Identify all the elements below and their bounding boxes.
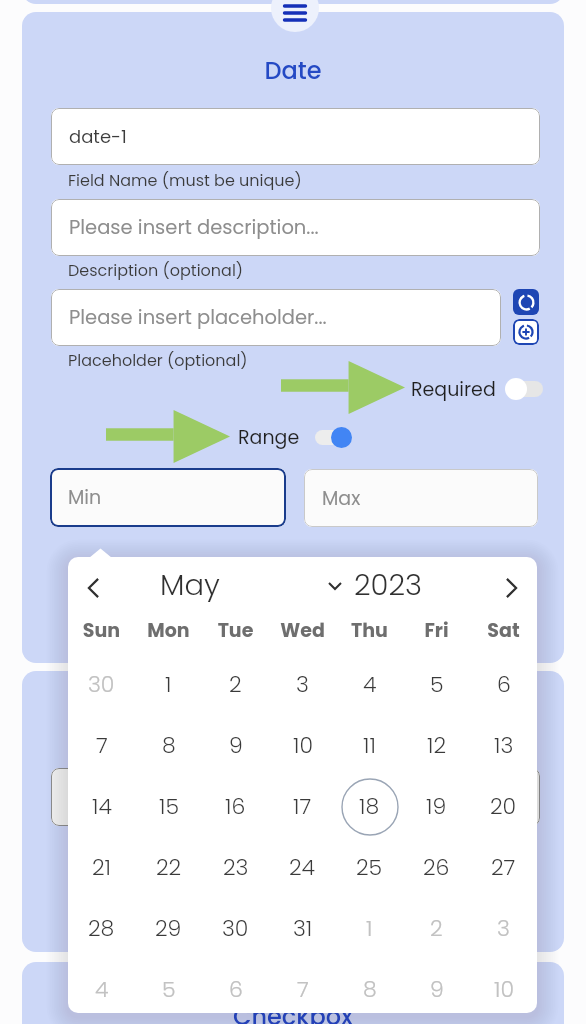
button[interactable]: Add variable	[513, 319, 539, 345]
button[interactable]: 27	[470, 837, 537, 898]
button[interactable]: 2	[403, 898, 470, 959]
button[interactable]: 8	[336, 959, 403, 1013]
staticText: 2	[229, 669, 242, 700]
staticText: Placeholder (optional)	[68, 349, 248, 371]
staticText: 28	[88, 913, 115, 944]
staticText: Required	[411, 376, 496, 403]
button[interactable]: 3	[470, 898, 537, 959]
staticText: 6	[229, 974, 243, 1005]
staticText: 18	[359, 791, 380, 822]
staticText: 1	[366, 913, 373, 944]
button[interactable]: 5	[135, 959, 202, 1013]
button[interactable]: 10	[470, 959, 537, 1013]
staticText: 11	[363, 730, 376, 761]
staticText: 2023	[354, 565, 423, 606]
button[interactable]: 8	[135, 715, 202, 776]
staticText: 9	[430, 974, 444, 1005]
button[interactable]: Range	[238, 422, 352, 452]
button[interactable]: 4	[336, 654, 403, 715]
staticText: Wed	[269, 617, 336, 644]
button[interactable]: date-1	[51, 108, 540, 165]
button[interactable]: 2	[202, 654, 269, 715]
button[interactable]: 28	[68, 898, 135, 959]
button[interactable]: Please insert description...	[51, 199, 540, 256]
button[interactable]: 16	[202, 776, 269, 837]
button[interactable]: 30	[202, 898, 269, 959]
button[interactable]: 31	[269, 898, 336, 959]
button[interactable]: 9	[403, 959, 470, 1013]
button[interactable]: 17	[269, 776, 336, 837]
button[interactable]: Next month	[492, 569, 530, 607]
staticText: Checkbox	[22, 1000, 564, 1024]
staticText: Description (optional)	[68, 259, 244, 281]
staticText: Sun	[68, 617, 135, 644]
button[interactable]: 9	[202, 715, 269, 776]
button[interactable]: 22	[135, 837, 202, 898]
button[interactable]: 25	[336, 837, 403, 898]
staticText: Thu	[336, 617, 403, 644]
staticText: 1	[165, 669, 172, 700]
staticText: date-1	[69, 124, 127, 149]
button[interactable]: 13	[470, 715, 537, 776]
staticText: Fri	[403, 617, 470, 644]
button[interactable]: Previous month	[74, 569, 112, 607]
staticText: 20	[490, 791, 517, 822]
staticText: 24	[289, 852, 316, 883]
button[interactable]: 21	[68, 837, 135, 898]
staticText: 10	[293, 730, 313, 761]
staticText: 8	[162, 730, 176, 761]
button[interactable]: Min	[50, 468, 286, 527]
button[interactable]: Please insert placeholder...	[51, 289, 501, 346]
staticText: 21	[92, 852, 112, 883]
button[interactable]: 1	[135, 654, 202, 715]
button[interactable]: 11	[336, 715, 403, 776]
button[interactable]: 15	[135, 776, 202, 837]
button[interactable]: 20	[470, 776, 537, 837]
staticText: 26	[423, 852, 450, 883]
button[interactable]: 24	[269, 837, 336, 898]
button[interactable]: 6	[470, 654, 537, 715]
button[interactable]: 23	[202, 837, 269, 898]
staticText: Max	[322, 485, 361, 512]
staticText: 12	[427, 730, 447, 761]
staticText: 4	[95, 974, 109, 1005]
button[interactable]: 12	[403, 715, 470, 776]
button[interactable]: Required	[411, 374, 543, 404]
staticText: 23	[223, 852, 249, 883]
staticText: 15	[159, 791, 179, 822]
button[interactable]: 6	[202, 959, 269, 1013]
button[interactable]: 30	[68, 654, 135, 715]
staticText: 5	[430, 669, 444, 700]
staticText: Date	[22, 54, 564, 88]
staticText: Range	[238, 424, 300, 451]
staticText: Please insert placeholder...	[69, 304, 327, 331]
staticText: 13	[494, 730, 514, 761]
staticText: 9	[229, 730, 243, 761]
button[interactable]	[51, 768, 540, 826]
staticText: Field Name (must be unique)	[68, 169, 302, 191]
staticText: Sat	[470, 617, 537, 644]
staticText: 4	[363, 669, 377, 700]
staticText: 17	[293, 791, 312, 822]
button[interactable]: Generate	[513, 289, 539, 315]
staticText: Please insert description...	[69, 214, 319, 241]
staticText: 8	[363, 974, 377, 1005]
staticText: 14	[92, 791, 112, 822]
button[interactable]: 7	[269, 959, 336, 1013]
button[interactable]: 10	[269, 715, 336, 776]
button[interactable]: 3	[269, 654, 336, 715]
button[interactable]: 7	[68, 715, 135, 776]
button[interactable]: 1	[336, 898, 403, 959]
button[interactable]: 18	[336, 776, 403, 837]
button[interactable]: 5	[403, 654, 470, 715]
staticText: 27	[491, 852, 516, 883]
staticText: Mon	[135, 617, 202, 644]
button[interactable]: Max	[304, 469, 538, 527]
button[interactable]: 14	[68, 776, 135, 837]
button[interactable]: 29	[135, 898, 202, 959]
button[interactable]: Drag handle	[271, 0, 319, 32]
button[interactable]: 19	[403, 776, 470, 837]
button[interactable]: 26	[403, 837, 470, 898]
staticText: 5	[162, 974, 176, 1005]
button[interactable]: 4	[68, 959, 135, 1013]
